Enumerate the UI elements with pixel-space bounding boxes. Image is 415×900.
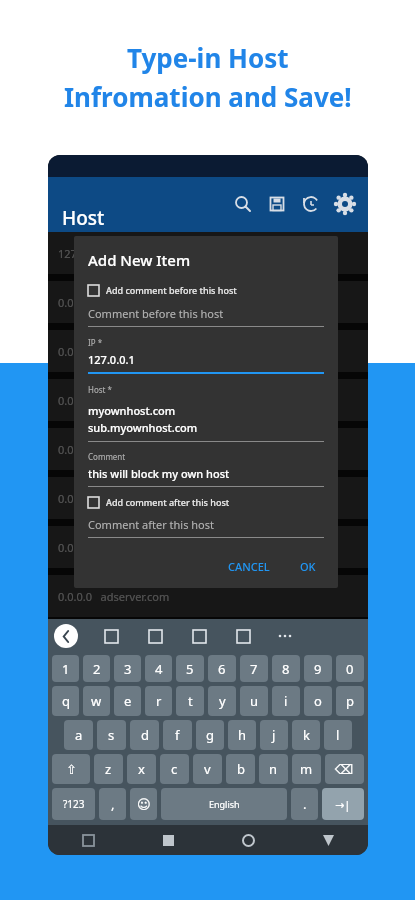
staticText: v [204, 760, 211, 778]
button[interactable]: p [336, 686, 364, 716]
button[interactable]: More [274, 625, 296, 647]
button[interactable]: d [130, 720, 159, 750]
button[interactable]: 6 [208, 655, 236, 682]
button[interactable]: o [304, 686, 332, 716]
button[interactable]: Keyboard [75, 827, 101, 853]
button[interactable]: q [52, 686, 79, 716]
button[interactable]: OK [292, 555, 324, 578]
button[interactable]: l [324, 720, 352, 750]
button[interactable]: g [196, 720, 224, 750]
staticText: OK [300, 559, 316, 574]
button[interactable]: this will block my own host [88, 466, 324, 487]
staticText: Comment [88, 451, 126, 462]
staticText: Host * [88, 384, 112, 395]
staticText: 127.0.0.1 [88, 352, 135, 367]
staticText: s [108, 726, 115, 744]
button[interactable]: u [240, 686, 268, 716]
button[interactable]: ?123 [52, 788, 95, 820]
staticText: m [300, 760, 313, 778]
button[interactable]: z [94, 754, 123, 784]
button[interactable]: 127.0.0.1 [88, 352, 324, 374]
staticText: English [209, 798, 240, 810]
button[interactable]: →| [322, 788, 364, 820]
staticText: 6 [218, 660, 226, 678]
button[interactable]: f [163, 720, 192, 750]
staticText: 4 [155, 660, 163, 678]
button[interactable]: b [226, 754, 255, 784]
button[interactable]: Add comment before this host [88, 284, 324, 296]
staticText: l [336, 726, 340, 744]
button[interactable]: 4 [145, 655, 172, 682]
button[interactable]: r [145, 686, 172, 716]
button[interactable]: Settings [328, 187, 362, 221]
button[interactable]: 0 [336, 655, 364, 682]
button[interactable]: ⇧ [52, 754, 90, 784]
staticText: Type-in Host [127, 40, 289, 75]
button[interactable]: v [193, 754, 222, 784]
staticText: o [314, 692, 322, 710]
staticText: b [237, 760, 245, 778]
button[interactable]: x [127, 754, 156, 784]
button[interactable]: Save [260, 187, 294, 221]
staticText: IP * [88, 337, 103, 348]
button[interactable]: w [83, 686, 110, 716]
button[interactable]: Screenshot [188, 625, 210, 647]
button[interactable]: 9 [304, 655, 332, 682]
button[interactable]: , [99, 788, 126, 820]
button[interactable]: 8 [272, 655, 300, 682]
button[interactable]: y [208, 686, 236, 716]
button[interactable]: CANCEL [220, 555, 278, 578]
button[interactable]: Clipboard [232, 625, 254, 647]
staticText: t [188, 692, 193, 710]
button[interactable]: m [292, 754, 321, 784]
button[interactable]: Back [54, 624, 78, 648]
staticText: sub.myownhost.com [88, 420, 198, 435]
button[interactable]: 5 [176, 655, 204, 682]
button[interactable]: s [97, 720, 126, 750]
button[interactable]: ⌫ [325, 754, 364, 784]
staticText: 5 [186, 660, 194, 678]
button[interactable]: j [260, 720, 288, 750]
button[interactable]: 1 [52, 655, 79, 682]
staticText: ⌫ [335, 762, 354, 777]
staticText: Comment after this host [88, 517, 214, 532]
staticText: x [138, 760, 145, 778]
staticText: q [62, 692, 70, 710]
button[interactable]: c [160, 754, 189, 784]
button[interactable]: n [259, 754, 288, 784]
button[interactable]: ☺ [130, 788, 157, 820]
staticText: d [141, 726, 149, 744]
button[interactable]: 7 [240, 655, 268, 682]
button[interactable]: t [176, 686, 204, 716]
staticText: z [105, 760, 112, 778]
button[interactable]: h [228, 720, 256, 750]
button[interactable]: 3 [114, 655, 141, 682]
button[interactable]: Translate [144, 625, 166, 647]
staticText: y [219, 692, 226, 710]
staticText: g [206, 726, 214, 744]
button[interactable]: 2 [83, 655, 110, 682]
staticText: 0 [346, 660, 354, 678]
button[interactable]: Back [315, 827, 341, 853]
staticText: 2 [93, 660, 101, 678]
button[interactable]: a [64, 720, 93, 750]
button[interactable]: Search [226, 187, 260, 221]
button[interactable]: Sticker [100, 625, 122, 647]
button[interactable]: Comment before this host [88, 306, 324, 327]
button[interactable]: . [291, 788, 318, 820]
staticText: myownhost.com [88, 403, 176, 418]
button[interactable]: i [272, 686, 300, 716]
button[interactable]: Comment after this host [88, 517, 324, 538]
staticText: 0.0.0.0 pixel.track.net [58, 540, 174, 555]
button[interactable]: Recents [155, 827, 181, 853]
button[interactable]: History [294, 187, 328, 221]
button[interactable]: e [114, 686, 141, 716]
button[interactable]: Add comment after this host [88, 496, 324, 508]
button[interactable]: k [292, 720, 320, 750]
button[interactable]: English [161, 788, 287, 820]
staticText: 127.0.0.1 localhost [58, 246, 160, 261]
staticText: a [75, 726, 83, 744]
button[interactable]: Home [235, 827, 261, 853]
staticText: 0.0.0.0 analytics.cdn. [58, 393, 171, 408]
staticText: k [303, 726, 310, 744]
